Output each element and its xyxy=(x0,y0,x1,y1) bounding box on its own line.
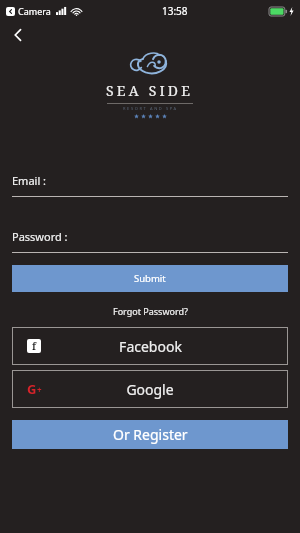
staticText: Or Register xyxy=(113,425,188,444)
staticText: 13:58 xyxy=(162,4,188,18)
button[interactable]: Back xyxy=(4,22,32,48)
button[interactable]: Or Register xyxy=(12,420,288,449)
staticText: Password : xyxy=(12,229,68,244)
button[interactable]: f xyxy=(12,327,288,365)
staticText: + xyxy=(37,384,42,395)
staticText: SEA SIDE xyxy=(106,81,194,100)
staticText: Camera xyxy=(18,5,51,17)
button[interactable]: Forgot Password? xyxy=(107,303,194,319)
staticText: f xyxy=(32,339,37,353)
staticText: Forgot Password? xyxy=(113,305,188,317)
staticText: Google xyxy=(126,380,174,399)
staticText: Email : xyxy=(12,173,47,188)
staticText: Facebook xyxy=(119,337,182,356)
button[interactable]: G xyxy=(12,370,288,408)
staticText: Submit xyxy=(134,272,166,285)
staticText: RESORT AND SPA xyxy=(123,106,178,111)
button[interactable]: Submit xyxy=(12,265,288,292)
staticText: G xyxy=(27,380,37,398)
